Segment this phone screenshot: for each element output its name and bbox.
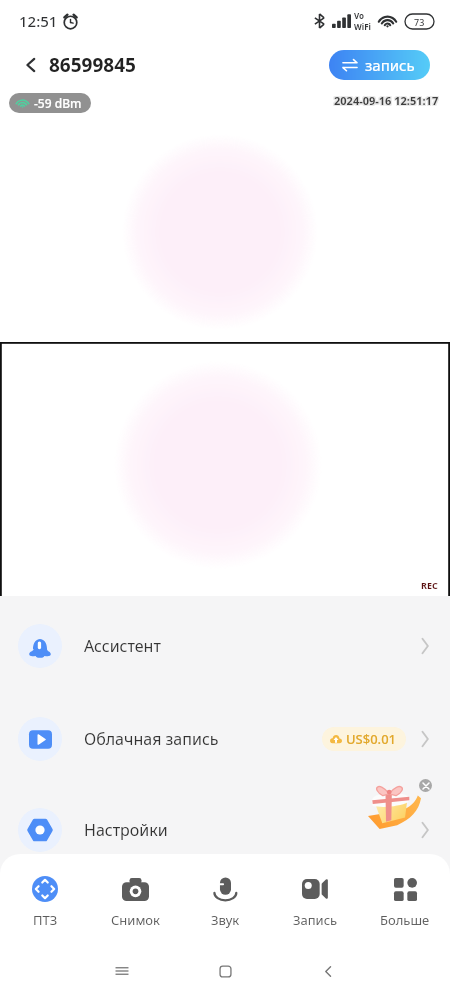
staticText: US$0.01 xyxy=(346,730,397,748)
staticText: 2024-09-16 12:51:17 xyxy=(334,93,439,108)
staticText: Облачная запись xyxy=(84,728,219,750)
button[interactable]: Gift xyxy=(368,781,421,829)
staticText: 2024-09-16 12:51:17 xyxy=(333,93,438,108)
button[interactable]: Снимок xyxy=(90,872,180,931)
staticText: 2024-09-16 12:51:17 xyxy=(335,94,440,109)
staticText: Звук xyxy=(211,911,240,929)
staticText: 2024-09-16 12:51:17 xyxy=(334,94,439,109)
button[interactable]: Облачная запись xyxy=(0,695,450,783)
staticText: Ассистент xyxy=(84,635,161,657)
button[interactable]: Back xyxy=(320,963,337,980)
staticText: 2024-09-16 12:51:17 xyxy=(335,93,440,108)
staticText: 2024-09-16 12:51:17 xyxy=(333,92,438,107)
staticText: 73 xyxy=(414,16,425,28)
staticText: -59 dBm xyxy=(34,95,82,111)
button[interactable]: Больше xyxy=(360,872,450,931)
staticText: 86599845 xyxy=(49,52,136,78)
button[interactable]: Home xyxy=(217,963,234,980)
button[interactable]: Close xyxy=(419,779,432,792)
staticText: Запись xyxy=(293,911,338,929)
button[interactable]: Запись xyxy=(270,872,360,931)
button[interactable]: Ассистент xyxy=(0,602,450,690)
button[interactable]: Звук xyxy=(180,872,270,931)
staticText: Vo xyxy=(354,10,365,21)
staticText: WiFi xyxy=(354,21,371,32)
staticText: 2024-09-16 12:51:17 xyxy=(333,94,438,109)
staticText: Снимок xyxy=(111,911,160,929)
staticText: 12:51 xyxy=(19,11,58,31)
button[interactable]: Настройки xyxy=(0,786,450,874)
staticText: 2024-09-16 12:51:17 xyxy=(335,92,440,107)
button[interactable]: ПТЗ xyxy=(0,872,90,931)
staticText: ПТЗ xyxy=(33,911,58,929)
staticText: Больше xyxy=(380,911,430,929)
staticText: запись xyxy=(365,55,415,75)
staticText: Настройки xyxy=(84,819,168,841)
staticText: 2024-09-16 12:51:17 xyxy=(334,92,439,107)
other: Back xyxy=(22,56,40,74)
button[interactable]: запись xyxy=(329,50,430,80)
button[interactable]: Back xyxy=(14,47,144,83)
staticText: REC xyxy=(421,579,438,591)
button[interactable]: Recents xyxy=(113,962,131,980)
